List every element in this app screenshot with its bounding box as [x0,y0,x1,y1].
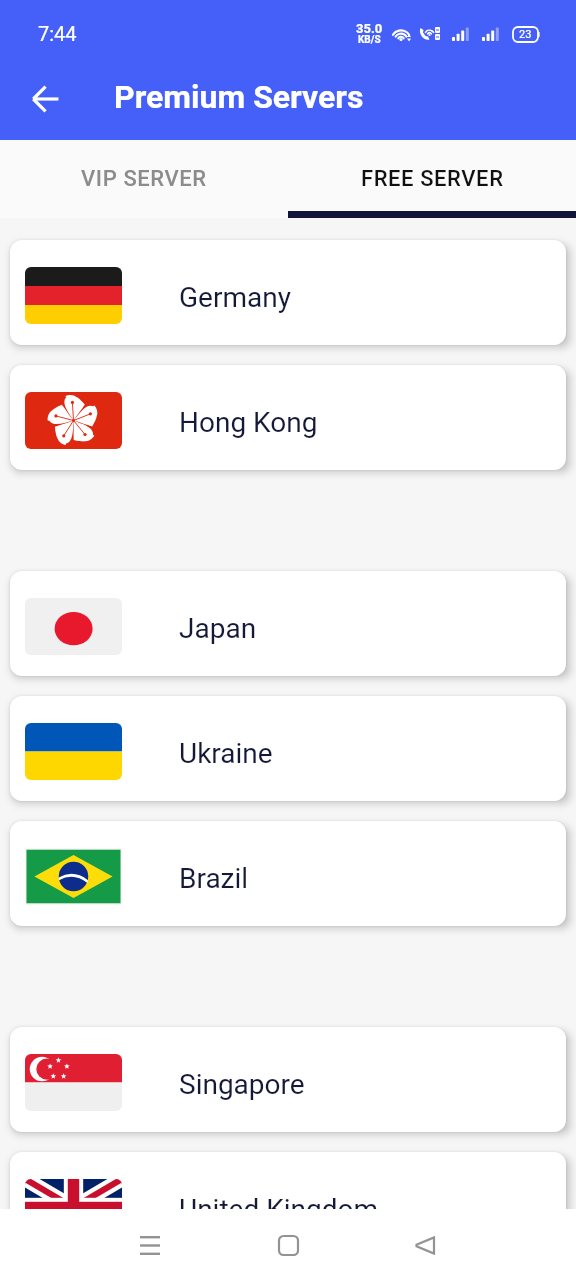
staticText: 35.0 [356,21,383,36]
button[interactable]: FREE SERVER [288,140,576,218]
button[interactable]: Singapore [10,1027,566,1132]
staticText: 23 [519,28,532,41]
staticText: Singapore [179,1068,305,1101]
staticText: KB/S [358,34,381,46]
staticText: 7:44 [38,22,77,45]
button[interactable]: Japan [10,571,566,676]
staticText: FREE SERVER [361,166,504,192]
button[interactable]: Germany [10,240,566,345]
staticText: Premium Servers [114,78,364,116]
staticText: Japan [179,612,257,645]
button[interactable]: Home [260,1217,316,1273]
staticText: United Kingdom [179,1193,379,1226]
button[interactable]: United Kingdom [10,1152,566,1257]
button[interactable]: Hong Kong [10,365,566,470]
staticText: Hong Kong [179,406,318,439]
button[interactable]: VIP SERVER [0,140,288,218]
staticText: Ukraine [179,737,273,770]
button[interactable]: Ukraine [10,696,566,801]
staticText: Brazil [179,862,249,895]
staticText: Germany [179,281,291,314]
button[interactable]: Brazil [10,821,566,926]
staticText: VIP SERVER [81,166,207,192]
button[interactable]: Back [396,1217,452,1273]
button[interactable]: Recent apps [122,1217,178,1273]
button[interactable]: Back [21,75,69,123]
